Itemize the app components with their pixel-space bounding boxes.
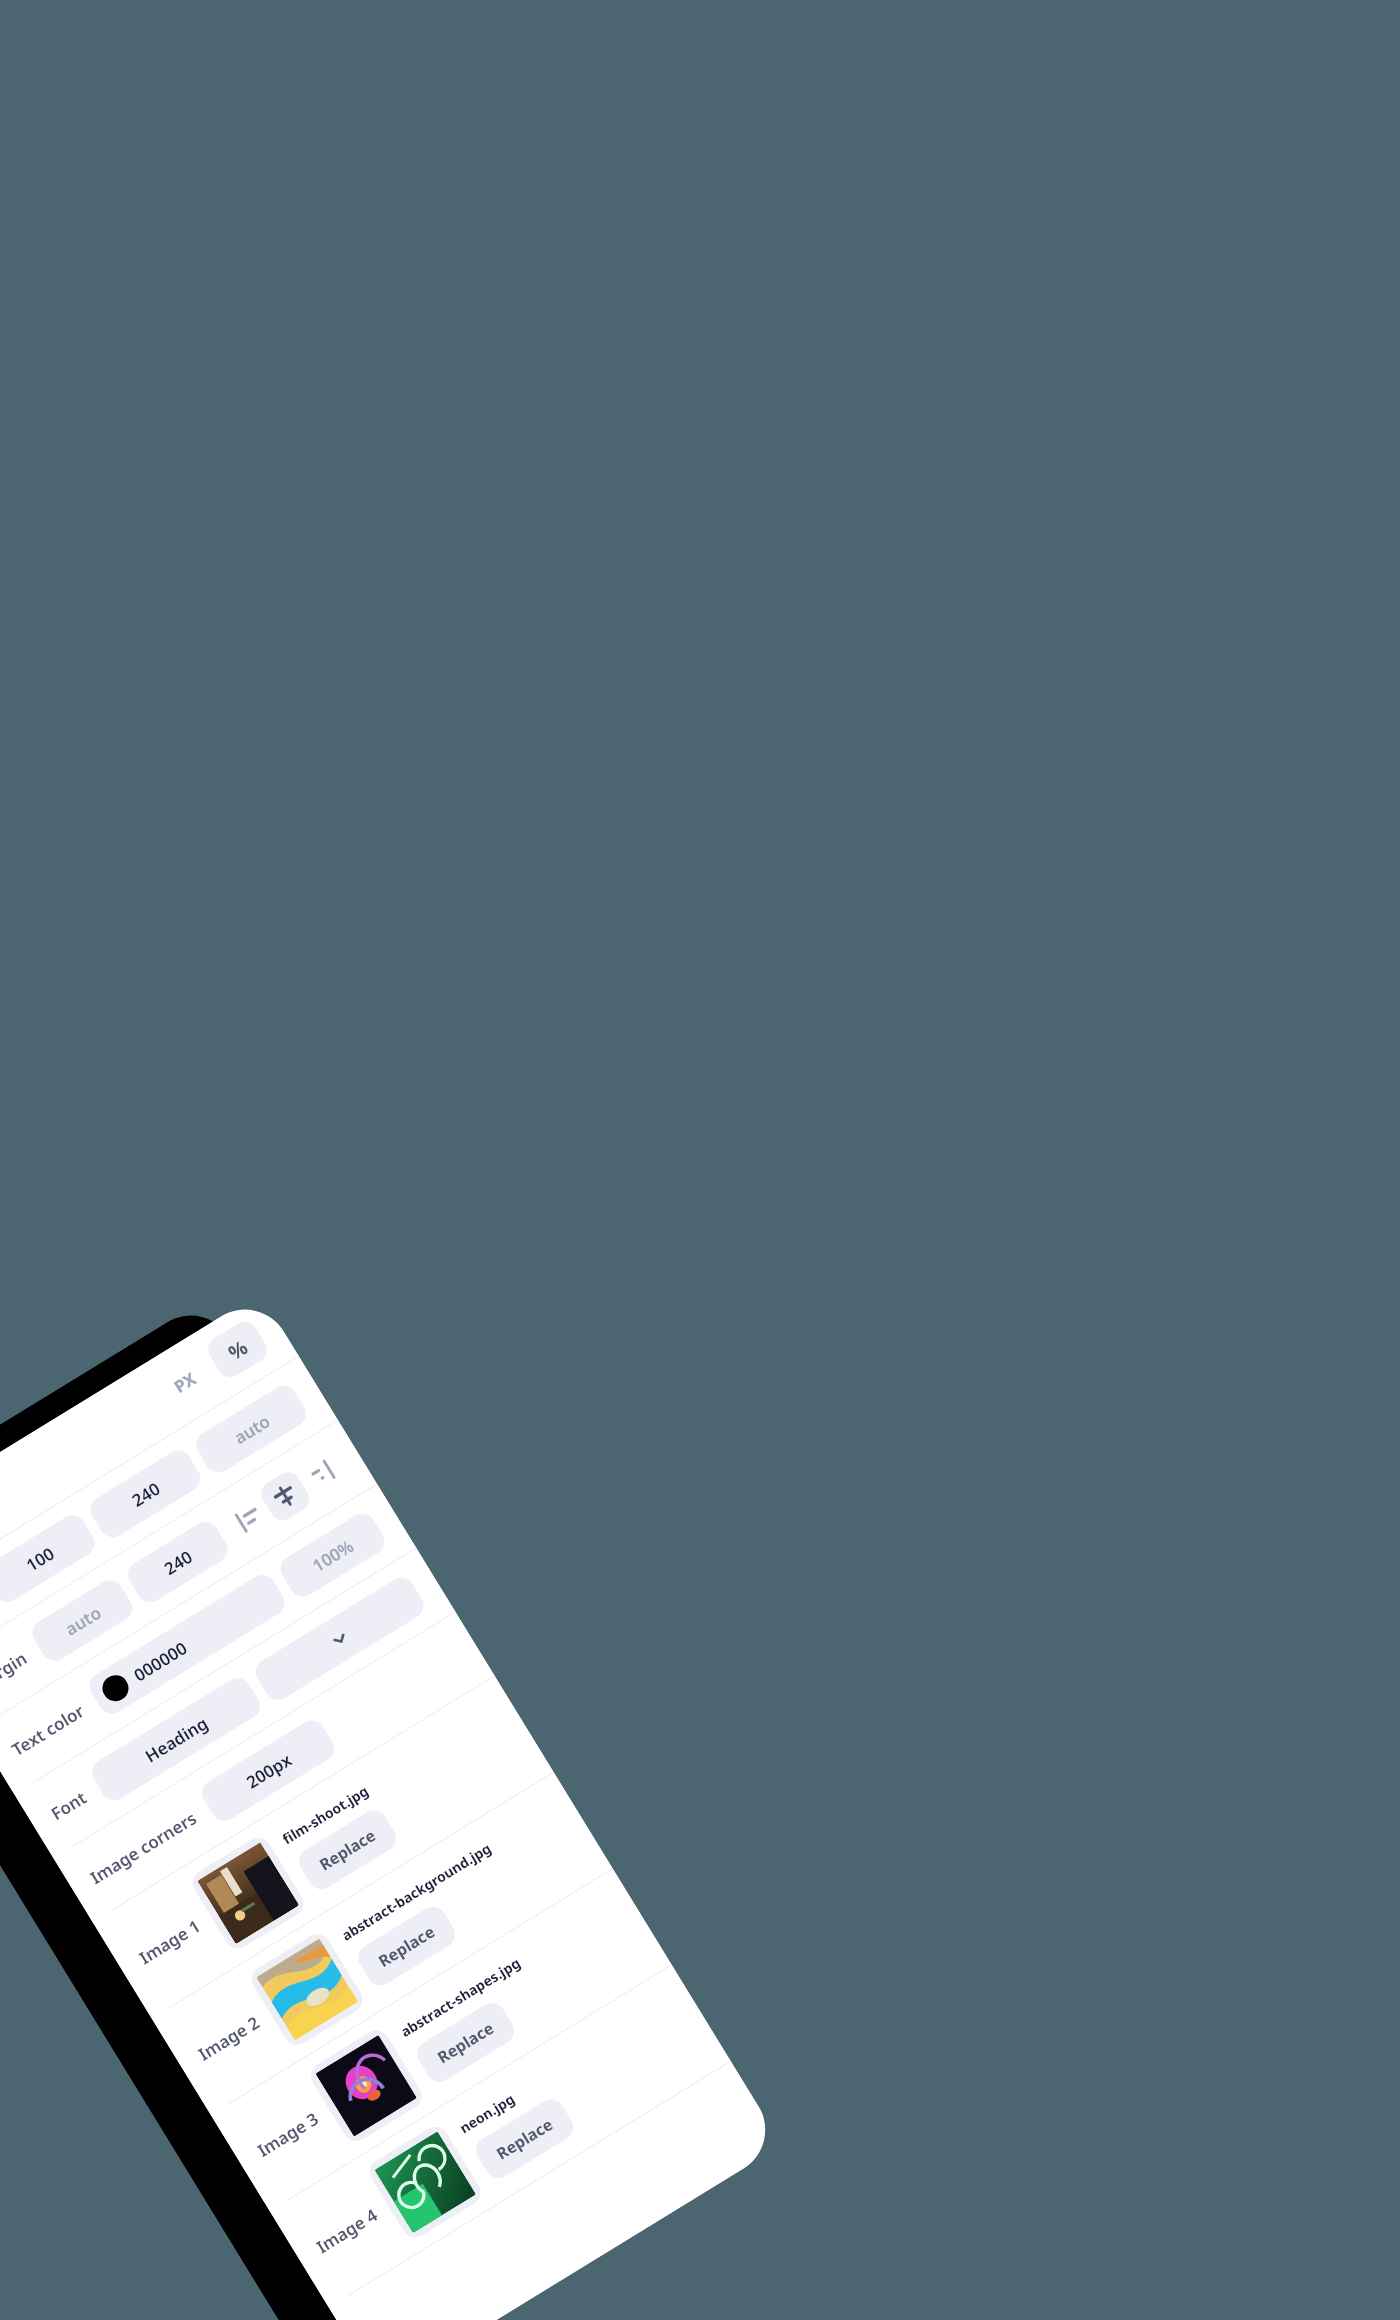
button[interactable]: 100 xyxy=(0,1510,100,1607)
button[interactable]: Text color xyxy=(0,1496,397,1782)
button[interactable]: Image corners xyxy=(72,1624,476,1910)
button[interactable]: Heading xyxy=(87,1673,265,1805)
button[interactable]: Image 4 xyxy=(288,1977,712,2296)
button[interactable]: 240 xyxy=(85,1445,205,1542)
staticText: Text color xyxy=(7,1699,88,1761)
staticText: Replace xyxy=(492,2113,557,2165)
button[interactable]: Image 2 xyxy=(170,1784,594,2103)
button[interactable]: 240 xyxy=(123,1517,233,1607)
button[interactable]: Replace xyxy=(412,1998,519,2087)
button[interactable]: 100% xyxy=(275,1508,390,1602)
button[interactable]: Choose font xyxy=(251,1572,429,1705)
staticText: Replace xyxy=(374,1920,439,1972)
staticText: abstract-background.jpg xyxy=(338,1838,495,1945)
button[interactable]: Font xyxy=(33,1560,437,1846)
staticText: Image 1 xyxy=(135,1914,205,1969)
staticText: 100% xyxy=(308,1534,358,1577)
button[interactable]: Align right xyxy=(292,1445,350,1503)
staticText: abstract-shapes.jpg xyxy=(397,1953,524,2041)
staticText: 200px xyxy=(242,1748,296,1793)
staticText: film-shoot.jpg xyxy=(279,1781,372,1848)
button[interactable]: Image 1 xyxy=(111,1688,535,2007)
button[interactable]: auto xyxy=(191,1381,311,1478)
button[interactable]: auto xyxy=(27,1575,137,1666)
staticText: Replace xyxy=(315,1824,380,1876)
staticText: 240 xyxy=(127,1477,164,1512)
button[interactable]: Margin xyxy=(0,1432,358,1718)
staticText: auto xyxy=(229,1409,274,1449)
button[interactable]: % xyxy=(203,1317,272,1382)
button[interactable]: Replace xyxy=(294,1805,401,1894)
staticText: % xyxy=(223,1333,253,1366)
button[interactable]: Width xyxy=(0,1368,319,1654)
staticText: Margin xyxy=(0,1646,31,1697)
staticText: Image corners xyxy=(86,1806,201,1889)
button[interactable]: Replace xyxy=(471,2094,578,2183)
staticText: 000000 xyxy=(129,1636,192,1686)
staticText: Heading xyxy=(140,1711,212,1768)
staticText: Font xyxy=(47,1786,91,1825)
button[interactable]: Image 3 xyxy=(229,1880,653,2199)
staticText: 240 xyxy=(159,1545,197,1580)
button[interactable]: 000000 xyxy=(84,1570,290,1719)
staticText: neon.jpg xyxy=(456,2089,519,2137)
button[interactable]: 200px xyxy=(197,1715,339,1826)
staticText: auto xyxy=(60,1601,106,1641)
staticText: Image 2 xyxy=(194,2010,264,2065)
button[interactable]: Align center xyxy=(256,1467,314,1525)
staticText: Image 3 xyxy=(253,2107,323,2162)
staticText: Image 4 xyxy=(312,2203,382,2258)
staticText: PX xyxy=(169,1367,200,1398)
button[interactable]: PX xyxy=(151,1351,219,1414)
button[interactable]: Align left xyxy=(220,1489,278,1547)
staticText: Replace xyxy=(433,2017,498,2068)
button[interactable]: Replace xyxy=(353,1901,460,1991)
staticText: 100 xyxy=(21,1541,59,1577)
